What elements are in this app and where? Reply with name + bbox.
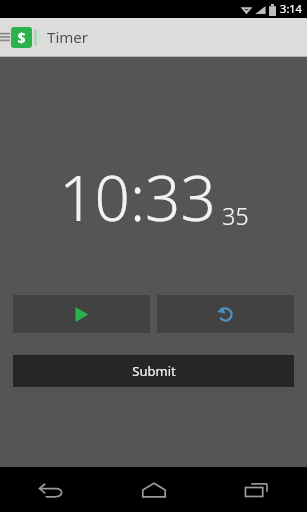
button[interactable]: Reset timer <box>157 295 294 333</box>
button[interactable]: Recent apps <box>205 467 307 512</box>
staticText: $ <box>17 28 26 47</box>
staticText: 10:33 <box>59 155 216 239</box>
button[interactable]: Open navigation drawer <box>1 27 10 47</box>
button[interactable]: Start timer <box>13 295 150 333</box>
button[interactable]: Submit <box>13 355 294 387</box>
button[interactable]: App icon <box>11 27 32 48</box>
staticText: Timer <box>47 27 88 47</box>
staticText: 3:14 <box>280 1 302 16</box>
staticText: 35 <box>222 200 249 231</box>
button[interactable]: Back <box>0 467 103 512</box>
button[interactable]: Home <box>103 467 205 512</box>
staticText: Submit <box>132 362 176 380</box>
